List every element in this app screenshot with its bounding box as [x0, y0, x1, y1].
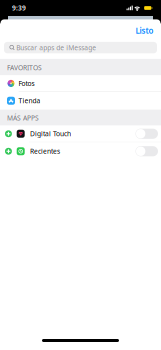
staticText: Digital Touch [30, 129, 71, 138]
staticText: Recientes [30, 147, 60, 156]
button[interactable]: Tienda [0, 92, 161, 110]
staticText: 9:39 [12, 4, 26, 12]
button[interactable]: Recientes [0, 142, 161, 160]
staticText: Fotos [19, 79, 35, 88]
staticText: Buscar apps de iMessage [16, 43, 96, 52]
staticText: FAVORITOS [7, 63, 42, 72]
staticText: Listo [135, 25, 153, 36]
button[interactable]: Listo [130, 21, 158, 40]
button[interactable]: Buscar apps de iMessage [4, 42, 157, 53]
staticText: MÁS APPS [7, 113, 39, 122]
staticText: Tienda [19, 96, 41, 105]
button[interactable]: Digital Touch [0, 126, 161, 142]
button[interactable]: Fotos [0, 75, 161, 92]
